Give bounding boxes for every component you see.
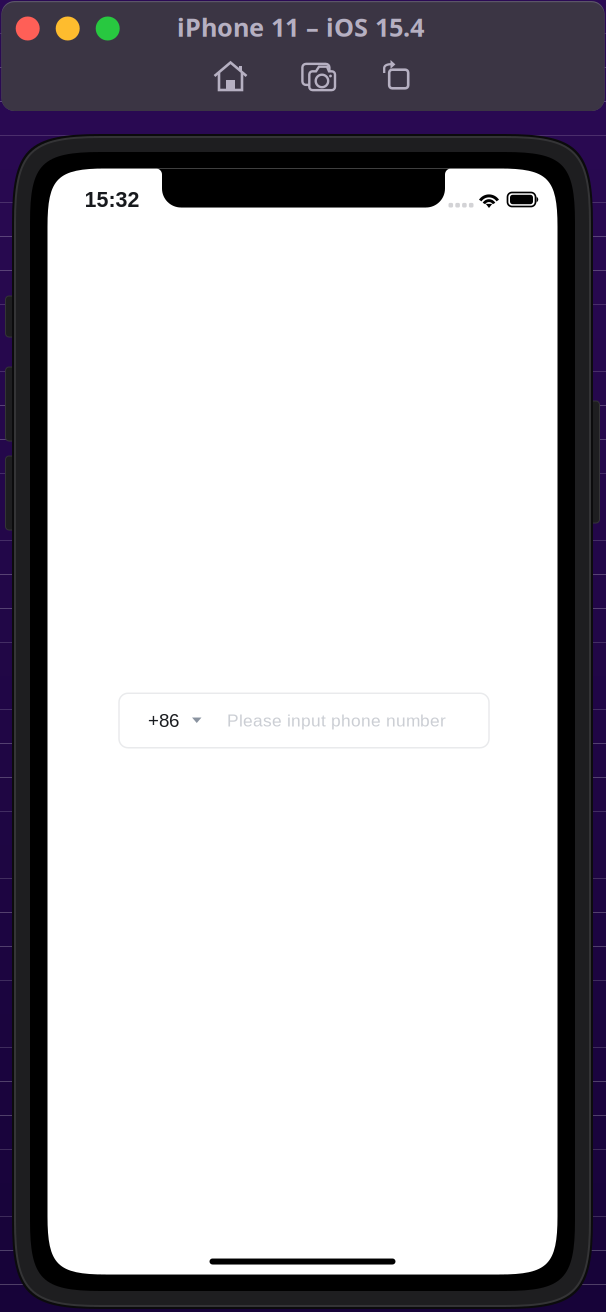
button[interactable]: Screenshot <box>296 57 340 97</box>
button[interactable]: Rotate <box>375 56 419 96</box>
button[interactable]: Home <box>208 57 252 97</box>
button[interactable]: Zoom window <box>96 16 120 40</box>
staticText: iPhone 11 – iOS 15.4 <box>177 10 424 44</box>
button[interactable]: Close window <box>16 16 40 40</box>
button[interactable]: Minimise window <box>56 16 80 40</box>
staticText: 15:32 <box>84 188 139 211</box>
button[interactable]: +86 <box>119 693 489 748</box>
staticText: Please input phone number <box>227 711 446 730</box>
staticText: +86 <box>148 710 179 731</box>
